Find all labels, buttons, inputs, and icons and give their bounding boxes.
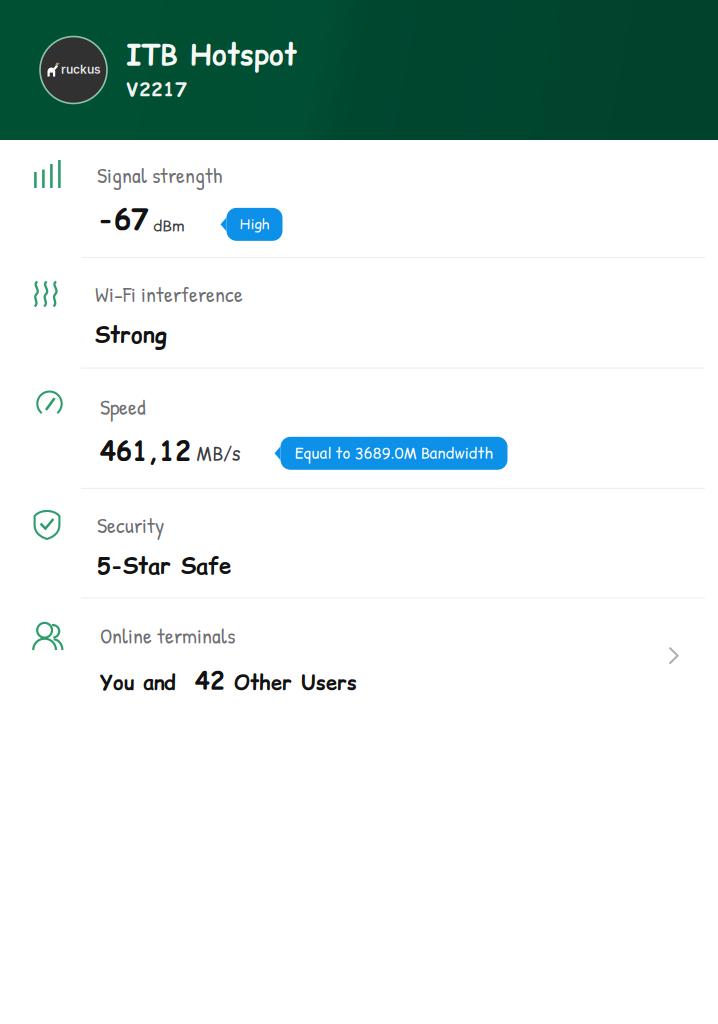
staticText: High (239, 215, 269, 234)
staticText: Signal strength (97, 160, 222, 190)
button[interactable]: Security (0, 489, 718, 597)
staticText: MB/s (191, 442, 241, 467)
button[interactable]: Signal strength (0, 140, 718, 257)
staticText: Online terminals (100, 621, 235, 650)
staticText: You and (100, 669, 185, 697)
staticText: 461,12 (100, 432, 191, 469)
button[interactable]: Speed (0, 369, 718, 488)
staticText: 5-Star Safe (97, 551, 231, 581)
staticText: 42 (185, 663, 225, 697)
staticText: ITB Hotspot (126, 35, 297, 74)
staticText: Equal to 3689.0M Bandwidth (294, 443, 493, 464)
staticText: Security (97, 510, 164, 540)
staticText: ruckus (61, 62, 101, 77)
button[interactable]: Online terminals (0, 599, 718, 716)
staticText: Other Users (225, 669, 357, 697)
button[interactable]: Wi-Fi interference (0, 258, 718, 367)
staticText: dBm (148, 214, 184, 237)
staticText: Speed (100, 392, 146, 421)
staticText: Wi-Fi interference (95, 279, 243, 309)
staticText: -67 (97, 200, 148, 239)
staticText: V2217 (126, 76, 187, 103)
staticText: Strong (95, 320, 167, 350)
